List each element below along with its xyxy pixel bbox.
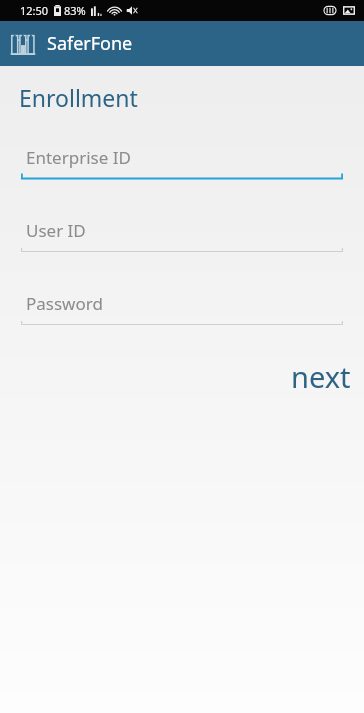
button[interactable]: next [285, 353, 357, 400]
staticText: 83% [64, 3, 86, 18]
staticText: Enrollment [19, 82, 138, 113]
staticText: Password [26, 292, 103, 315]
staticText: Enterprise ID [26, 146, 131, 169]
button[interactable]: User ID [21, 217, 343, 256]
other: SaferFone logo [9, 30, 37, 58]
staticText: SaferFone [47, 31, 133, 56]
button[interactable]: Password [21, 290, 343, 329]
staticText: next [291, 357, 351, 396]
staticText: 12:50 [20, 3, 49, 18]
staticText: User ID [26, 219, 86, 242]
button[interactable]: Enterprise ID [21, 144, 343, 183]
